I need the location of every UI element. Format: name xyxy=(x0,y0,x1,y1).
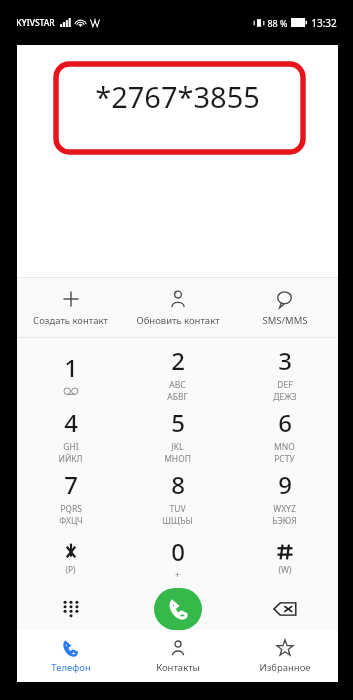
button[interactable]: Backspace xyxy=(231,588,338,630)
staticText: DEF xyxy=(277,379,293,391)
staticText: ИЙКЛ xyxy=(58,453,83,465)
staticText: Обновить контакт xyxy=(136,314,220,327)
staticText: АБВГ xyxy=(167,391,188,403)
staticText: KYIVSTAR xyxy=(16,17,55,29)
button[interactable]: 7 xyxy=(17,466,124,528)
staticText: 1 xyxy=(64,351,78,384)
button[interactable]: 9 xyxy=(231,466,338,528)
staticText: 13:32 xyxy=(311,16,337,30)
button[interactable]: 1 xyxy=(17,342,124,404)
button[interactable]: 2 xyxy=(124,342,231,404)
staticText: МНОП xyxy=(164,453,191,465)
staticText: Контакты xyxy=(156,661,200,674)
staticText: (P) xyxy=(65,564,76,576)
staticText: 5 xyxy=(171,406,185,439)
staticText: (W) xyxy=(278,564,292,576)
staticText: ФХЦЧ xyxy=(59,515,83,527)
button[interactable]: Show keypad xyxy=(17,588,124,630)
button[interactable]: Создать контакт xyxy=(17,278,124,337)
staticText: ЬЭЮЯ xyxy=(272,515,297,527)
staticText: ШЩЪЫ xyxy=(162,515,193,527)
button[interactable]: Избранное xyxy=(231,630,338,682)
button[interactable]: 3 xyxy=(231,342,338,404)
staticText: *2767*3855 xyxy=(95,77,260,116)
staticText: ДЕЖЗ xyxy=(273,391,297,403)
staticText: WXYZ xyxy=(273,503,296,515)
staticText: MNO xyxy=(274,441,295,453)
staticText: GHI xyxy=(63,441,79,453)
staticText: Телефон xyxy=(51,661,91,674)
button[interactable]: 5 xyxy=(124,404,231,466)
staticText: PQRS xyxy=(60,503,82,515)
staticText: TUV xyxy=(169,503,186,515)
button[interactable]: Call xyxy=(154,588,202,630)
staticText: + xyxy=(175,569,180,581)
button[interactable]: 4 xyxy=(17,404,124,466)
staticText: 3 xyxy=(278,344,292,377)
button[interactable]: 8 xyxy=(124,466,231,528)
staticText: SMS/MMS xyxy=(262,314,308,327)
button[interactable]: Телефон xyxy=(17,630,124,682)
button[interactable]: SMS/MMS xyxy=(231,278,338,337)
staticText: 6 xyxy=(278,406,292,439)
staticText: 7 xyxy=(64,468,78,501)
staticText: Создать контакт xyxy=(33,314,108,327)
staticText: 2 xyxy=(171,344,185,377)
staticText: ABC xyxy=(169,379,186,391)
staticText: Избранное xyxy=(259,661,311,674)
button[interactable]: (W) xyxy=(231,528,338,588)
button[interactable]: Контакты xyxy=(124,630,231,682)
button[interactable]: 0 xyxy=(124,528,231,588)
button[interactable]: Обновить контакт xyxy=(124,278,231,337)
staticText: 88 % xyxy=(267,17,288,29)
staticText: 8 xyxy=(171,468,185,501)
staticText: 0 xyxy=(171,535,185,568)
staticText: 9 xyxy=(278,468,292,501)
button[interactable]: 6 xyxy=(231,404,338,466)
staticText: РСТУ xyxy=(274,453,295,465)
staticText: JKL xyxy=(171,441,184,453)
staticText: 4 xyxy=(64,406,78,439)
button[interactable]: (P) xyxy=(17,528,124,588)
